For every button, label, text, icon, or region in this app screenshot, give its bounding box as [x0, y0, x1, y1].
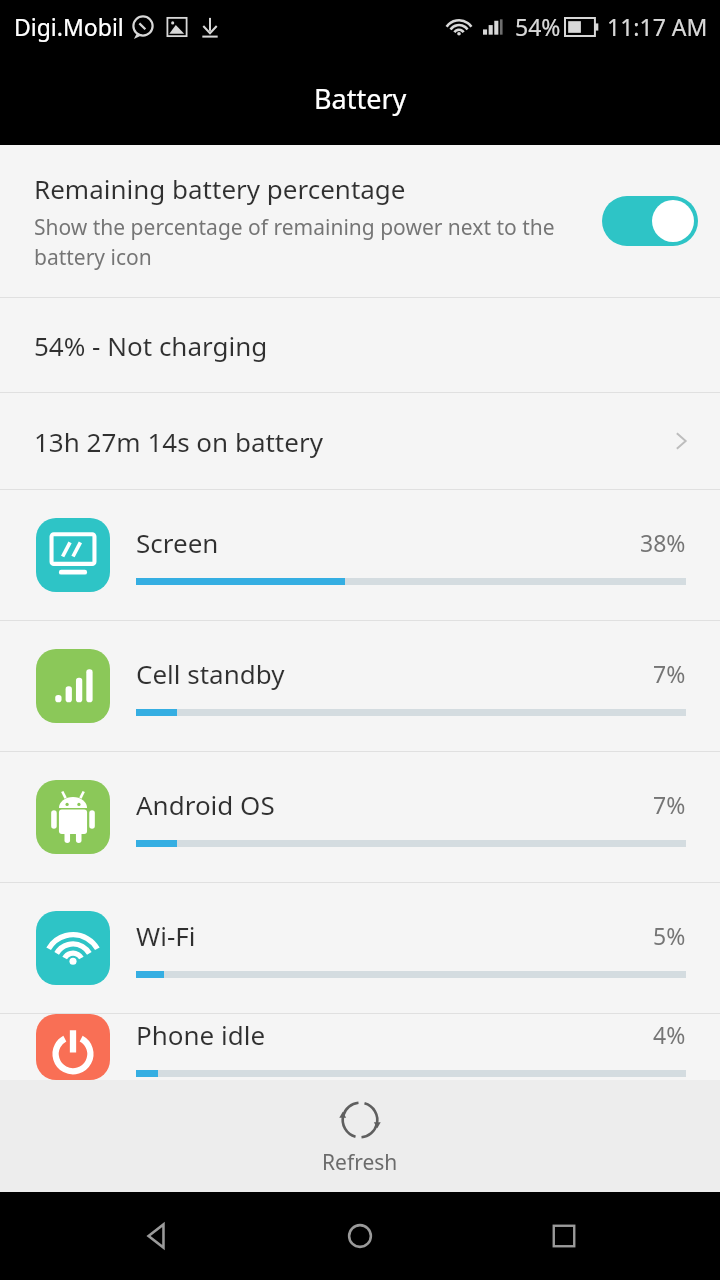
staticText: 54% - Not charging: [34, 328, 268, 363]
staticText: Android OS: [136, 787, 653, 822]
staticText: 4%: [653, 1019, 686, 1050]
button[interactable]: Android OS: [0, 752, 720, 882]
staticText: Battery: [314, 80, 407, 117]
button[interactable]: Refresh: [0, 1080, 720, 1192]
button[interactable]: 13h 27m 14s on battery: [0, 393, 720, 489]
staticText: Show the percentage of remaining power n…: [34, 213, 588, 271]
button[interactable]: Back: [108, 1192, 204, 1280]
staticText: Digi.Mobil: [14, 11, 124, 42]
button[interactable]: Phone idle: [0, 1014, 720, 1080]
staticText: 5%: [653, 920, 686, 951]
staticText: Wi-Fi: [136, 918, 653, 953]
button[interactable]: 54% - Not charging: [0, 298, 720, 392]
staticText: Phone idle: [136, 1017, 653, 1052]
staticText: Screen: [136, 525, 640, 560]
button[interactable]: Home: [312, 1192, 408, 1280]
button[interactable]: Wi-Fi: [0, 883, 720, 1013]
staticText: 7%: [653, 658, 686, 689]
staticText: 7%: [653, 789, 686, 820]
staticText: 11:17 AM: [607, 11, 708, 42]
staticText: 54%: [515, 11, 561, 42]
staticText: 38%: [640, 527, 686, 558]
staticText: Refresh: [322, 1148, 398, 1177]
staticText: Remaining battery percentage: [34, 171, 406, 206]
button[interactable]: Remaining battery percentage toggle: [602, 196, 698, 246]
button[interactable]: Remaining battery percentage: [0, 145, 720, 297]
button[interactable]: Recents: [516, 1192, 612, 1280]
button[interactable]: Screen: [0, 490, 720, 620]
staticText: 13h 27m 14s on battery: [34, 424, 668, 459]
staticText: Cell standby: [136, 656, 653, 691]
button[interactable]: Cell standby: [0, 621, 720, 751]
